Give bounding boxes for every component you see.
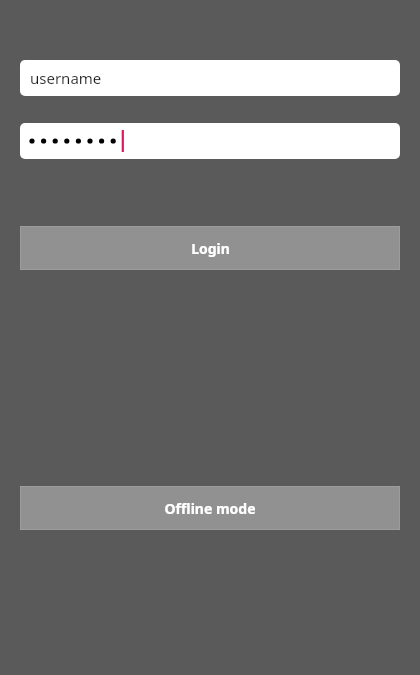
button[interactable]: Offline mode [21,487,399,529]
button[interactable]: username [20,60,400,96]
button[interactable]: Password [20,123,400,159]
button[interactable]: Login [21,227,399,269]
staticText: Login [191,239,230,258]
staticText: username [30,68,102,88]
staticText: Offline mode [164,499,256,518]
